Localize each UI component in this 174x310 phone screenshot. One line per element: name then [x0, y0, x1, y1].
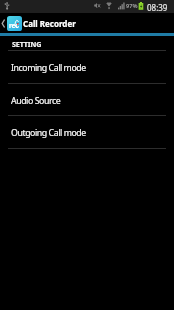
staticText: 08:39	[147, 2, 168, 13]
staticText: Call Recorder	[23, 18, 76, 29]
staticText: rec	[9, 21, 19, 30]
staticText: 97%	[126, 2, 138, 10]
button[interactable]: Incoming Call mode	[0, 50, 174, 83]
button[interactable]: Navigate up	[0, 19, 7, 28]
button[interactable]: Audio Source	[0, 83, 174, 116]
staticText: SETTING	[12, 39, 42, 49]
staticText: Audio Source	[11, 95, 61, 107]
staticText: Outgoing Call mode	[11, 127, 86, 139]
button[interactable]: Outgoing Call mode	[0, 115, 174, 148]
staticText: Incoming Call mode	[11, 62, 86, 74]
